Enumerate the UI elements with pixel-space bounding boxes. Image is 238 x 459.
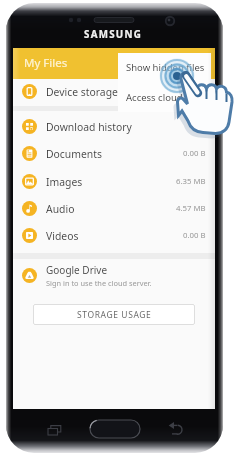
button[interactable]: Videos: [13, 222, 215, 249]
staticText: STORAGE USAGE: [77, 309, 152, 321]
staticText: 6.35 MB: [176, 176, 206, 187]
staticText: Documents: [46, 147, 103, 161]
button[interactable]: Documents: [13, 140, 215, 167]
staticText: Show hidden files: [126, 61, 205, 74]
button[interactable]: Download history: [13, 113, 215, 140]
staticText: Google Drive: [46, 263, 108, 277]
button[interactable]: Audio: [13, 195, 215, 222]
staticText: Device storage: [46, 85, 118, 99]
button[interactable]: Show hidden files: [118, 53, 211, 82]
staticText: Videos: [46, 229, 79, 243]
button[interactable]: Access cloud: [118, 82, 211, 112]
staticText: 4.57 MB: [176, 203, 206, 214]
staticText: SAMSUNG: [84, 28, 143, 41]
button[interactable]: STORAGE USAGE: [33, 304, 195, 325]
staticText: Download history: [46, 120, 132, 134]
button[interactable]: Device storage: [13, 78, 215, 105]
staticText: Access cloud: [126, 91, 183, 104]
staticText: My Files: [24, 55, 68, 71]
staticText: 0.00 B: [183, 148, 206, 159]
button[interactable]: Images: [13, 168, 215, 195]
staticText: 0.00 B: [183, 230, 206, 241]
staticText: Images: [46, 175, 83, 189]
staticText: Audio: [46, 202, 75, 216]
staticText: Sign in to use the cloud server.: [46, 278, 152, 288]
button[interactable]: Google Drive: [13, 261, 215, 289]
button[interactable]: My Files: [13, 48, 215, 79]
